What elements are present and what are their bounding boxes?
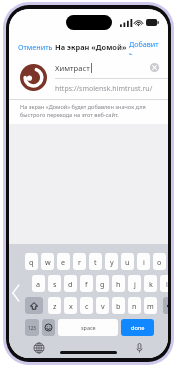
button[interactable]: Очистить	[150, 63, 168, 72]
button[interactable]: d	[64, 275, 77, 292]
staticText: u	[125, 257, 130, 267]
button[interactable]: m	[144, 297, 157, 314]
staticText: w	[45, 257, 51, 267]
staticText: https://smolensk.himtrust.ru/	[55, 84, 153, 94]
staticText: n	[132, 301, 137, 311]
staticText: done	[131, 324, 145, 332]
button[interactable]: Диктовка	[133, 340, 146, 356]
button[interactable]: o	[153, 253, 166, 270]
button[interactable]: s	[48, 275, 61, 292]
staticText: v	[101, 301, 105, 311]
button[interactable]: y	[105, 253, 118, 270]
staticText: m	[147, 301, 154, 311]
staticText: j	[134, 279, 136, 289]
staticText: c	[85, 301, 89, 311]
button[interactable]: n	[128, 297, 141, 314]
staticText: o	[157, 257, 162, 267]
staticText: y	[110, 257, 114, 267]
button[interactable]: r	[73, 253, 86, 270]
button[interactable]: w	[41, 253, 54, 270]
staticText: x	[69, 301, 73, 311]
button[interactable]: i	[137, 253, 150, 270]
staticText: На экран «Домой» будет добавлен значок д…	[20, 103, 154, 118]
button[interactable]: l	[160, 275, 168, 292]
button[interactable]: q	[25, 253, 38, 270]
staticText: l	[166, 279, 168, 289]
staticText: t	[94, 257, 97, 267]
button[interactable]: u	[121, 253, 134, 270]
button[interactable]: b	[112, 297, 125, 314]
staticText: h	[116, 279, 121, 289]
staticText: i	[143, 257, 145, 267]
staticText: z	[53, 301, 57, 311]
button[interactable]: f	[80, 275, 93, 292]
staticText: Химтраст	[55, 63, 90, 73]
button[interactable]: a	[32, 275, 45, 292]
staticText: Отменить	[18, 42, 53, 52]
button[interactable]: Сменить язык	[31, 340, 47, 356]
staticText: r	[78, 257, 81, 267]
button[interactable]: Отменить	[17, 40, 54, 54]
button[interactable]: Emoji	[42, 319, 55, 336]
button[interactable]: c	[80, 297, 93, 314]
staticText: s	[53, 279, 57, 289]
staticText: f	[85, 279, 88, 289]
button[interactable]: Клавиша	[25, 297, 43, 314]
button[interactable]: v	[96, 297, 109, 314]
button[interactable]: x	[64, 297, 77, 314]
button[interactable]: Добавить	[128, 37, 160, 57]
button[interactable]: g	[96, 275, 109, 292]
staticText: Добавить	[129, 39, 159, 55]
button[interactable]: t	[89, 253, 102, 270]
staticText: g	[100, 279, 105, 289]
button[interactable]: z	[48, 297, 61, 314]
button[interactable]: space	[58, 319, 118, 336]
staticText: k	[149, 279, 153, 289]
button[interactable]: 123	[25, 319, 39, 336]
staticText: a	[36, 279, 41, 289]
button[interactable]: Клавиша	[163, 297, 168, 314]
staticText: d	[68, 279, 73, 289]
staticText: b	[116, 301, 121, 311]
button[interactable]: h	[112, 275, 125, 292]
button[interactable]: done	[121, 319, 154, 336]
staticText: 123	[28, 325, 36, 331]
button[interactable]: k	[144, 275, 157, 292]
button[interactable]: e	[57, 253, 70, 270]
staticText: На экран «Домой»	[55, 42, 127, 52]
staticText: q	[29, 257, 34, 267]
staticText: e	[61, 257, 66, 267]
button[interactable]: j	[128, 275, 141, 292]
staticText: space	[81, 324, 96, 331]
